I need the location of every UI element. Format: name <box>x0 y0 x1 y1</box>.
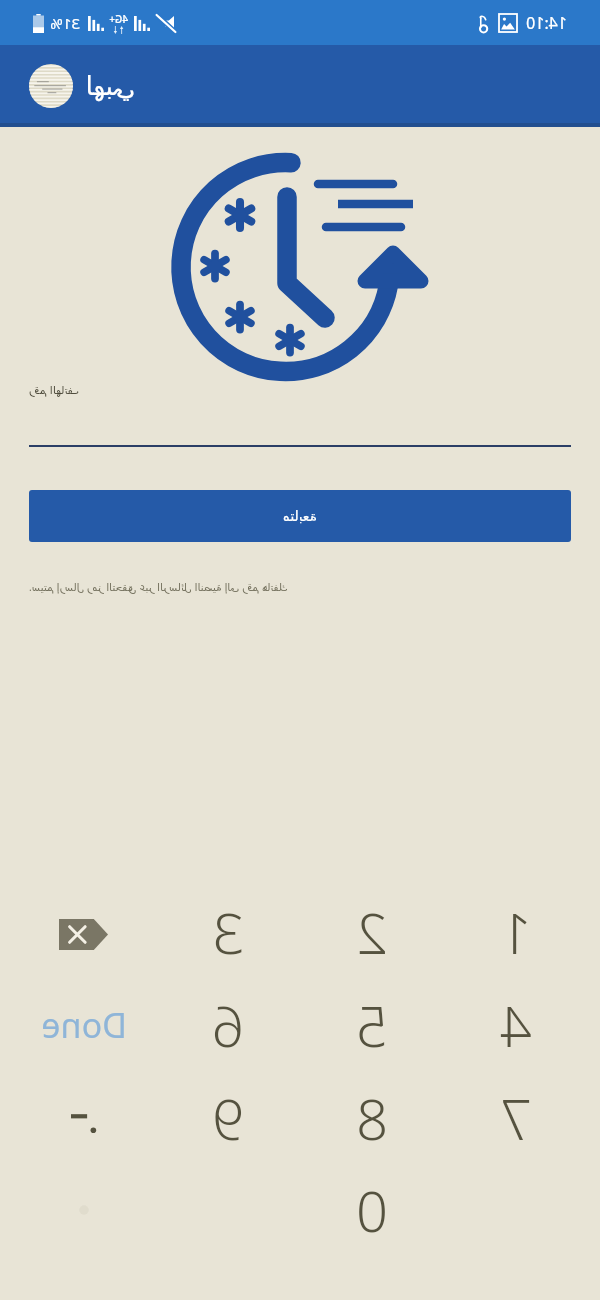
button[interactable]: 6 <box>156 978 300 1071</box>
button[interactable]: 2 <box>300 885 444 978</box>
staticText: 4G+ <box>109 12 128 26</box>
button[interactable]: متابعة <box>29 490 571 542</box>
staticText: لهبي <box>85 71 135 101</box>
button[interactable]: 1 <box>444 885 588 978</box>
staticText: 0 <box>356 1172 388 1248</box>
staticText: 5 <box>356 987 388 1063</box>
other: Dash and dot <box>71 1111 97 1135</box>
button[interactable]: Backspace <box>12 885 156 978</box>
staticText: 3 <box>212 894 244 970</box>
button[interactable]: 0 <box>300 1164 444 1255</box>
button[interactable]: 3 <box>156 885 300 978</box>
staticText: 6 <box>212 987 244 1063</box>
button[interactable]: 9 <box>156 1071 300 1164</box>
button[interactable]: 7 <box>444 1071 588 1164</box>
staticText: 8 <box>356 1080 388 1156</box>
button[interactable]: Dash and dot <box>12 1071 156 1164</box>
staticText: 7 <box>500 1080 532 1156</box>
staticText: 14:10 <box>526 12 567 34</box>
button[interactable]: 8 <box>300 1071 444 1164</box>
button[interactable]: 5 <box>300 978 444 1071</box>
staticText: سيتم إرسال رمز التحقق عبر الرسائل النصية… <box>29 580 600 594</box>
staticText: 2 <box>356 894 388 970</box>
staticText: Done <box>41 1002 127 1048</box>
staticText: 1 <box>500 894 532 970</box>
staticText: 9 <box>212 1080 244 1156</box>
button[interactable]: 4 <box>444 978 588 1071</box>
other: Backspace <box>59 919 108 950</box>
other: Change keyboard <box>75 1201 93 1219</box>
staticText: متابعة <box>282 508 317 524</box>
button[interactable]: Done <box>12 978 156 1071</box>
staticText: رقم الهاتف <box>29 382 600 397</box>
staticText: 4 <box>500 987 532 1063</box>
staticText: 31% <box>50 13 80 33</box>
